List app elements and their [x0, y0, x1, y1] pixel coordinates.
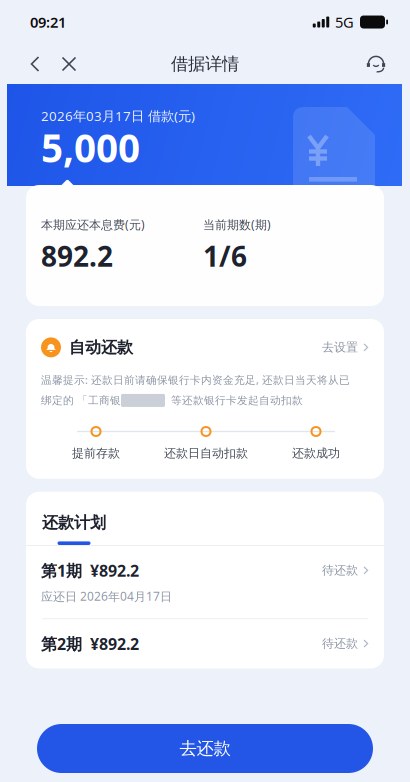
staticText: 等还款银行卡发起自动扣款 [165, 394, 303, 407]
staticText: 还款计划 [42, 513, 106, 532]
staticText: 去设置 [322, 340, 358, 355]
staticText: 09:21 [30, 12, 66, 32]
button[interactable]: Back [18, 44, 52, 84]
button[interactable]: 第2期 ¥892.2 [26, 619, 384, 668]
staticText: 待还款 [322, 636, 358, 651]
staticText: 温馨提示: 还款日前请确保银行卡内资金充足, 还款日当天将从已 [41, 373, 350, 387]
staticText: 892.2 [41, 237, 113, 275]
staticText: 5,000 [41, 122, 140, 173]
staticText: 5G [335, 12, 354, 32]
button[interactable]: 去还款 [37, 724, 373, 773]
staticText: 绑定的 「工商银 [41, 394, 121, 407]
staticText: 本期应还本息费(元) [41, 216, 145, 232]
staticText: 提前存款 [72, 446, 120, 461]
button[interactable]: 去设置 [322, 336, 369, 359]
staticText: 还款成功 [292, 446, 340, 461]
staticText: 2026年03月17日 借款(元) [41, 107, 195, 125]
button[interactable]: Close [52, 44, 86, 84]
button[interactable]: Customer service [358, 44, 394, 84]
staticText: 自动还款 [69, 337, 133, 357]
staticText: 借据详情 [171, 53, 239, 75]
staticText: 1/6 [203, 237, 247, 275]
staticText: 应还日 2026年04月17日 [41, 588, 172, 604]
button[interactable]: 第1期 ¥892.2 [26, 546, 384, 618]
staticText: 第1期 ¥892.2 [41, 560, 139, 581]
staticText: 还款日自动扣款 [164, 446, 248, 461]
staticText: 去还款 [179, 738, 230, 759]
staticText: 待还款 [322, 563, 358, 578]
staticText: 第2期 ¥892.2 [41, 633, 139, 654]
staticText: 当前期数(期) [203, 216, 271, 232]
